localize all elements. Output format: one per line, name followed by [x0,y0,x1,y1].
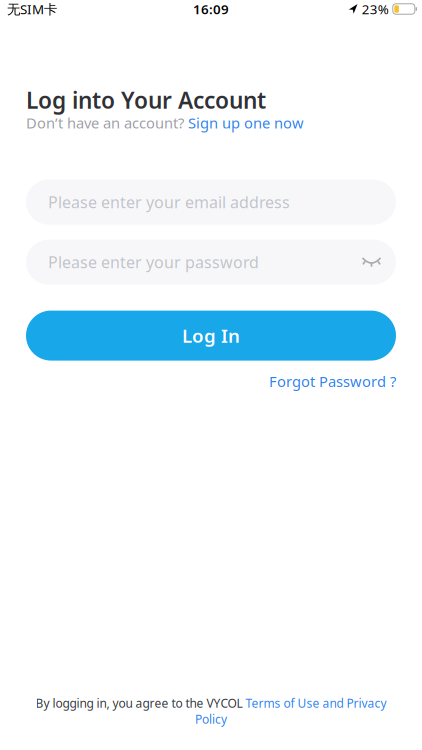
staticText: 16:09 [193,0,229,18]
staticText: Don’t have an account? [26,113,184,133]
staticText: 无SIM卡 [7,0,57,18]
staticText: Please enter your email address [48,191,290,213]
button[interactable]: Policy [195,711,227,727]
button[interactable]: Log In [26,311,396,361]
button[interactable]: Please enter your password [26,240,396,285]
button[interactable]: Terms of Use and Privacy [245,695,386,711]
staticText: Log into Your Account [26,85,266,115]
staticText: Terms of Use and Privacy [245,695,386,711]
staticText: 23% [362,0,389,18]
button[interactable]: Forgot Password ? [269,372,396,391]
staticText: Log In [182,323,240,348]
button[interactable]: Please enter your email address [26,180,396,225]
staticText: Sign up one now [188,113,304,133]
staticText: Forgot Password ? [269,372,396,391]
button[interactable] [362,257,396,267]
staticText: Please enter your password [48,251,259,273]
button[interactable]: Sign up one now [188,113,304,133]
staticText: Policy [195,711,227,727]
staticText: By logging in, you agree to the VYCOL [35,695,245,711]
